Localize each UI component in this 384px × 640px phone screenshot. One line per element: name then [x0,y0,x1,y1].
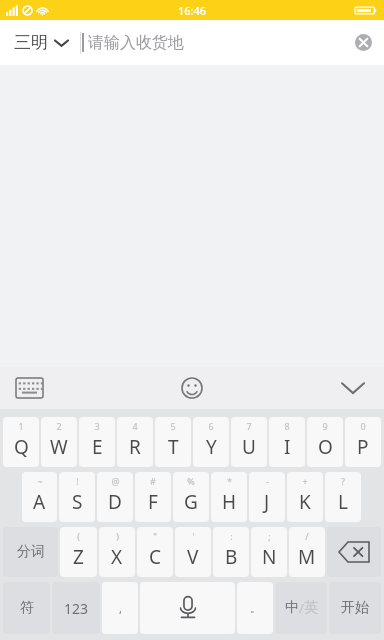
staticText: B [225,544,238,570]
button[interactable]: 7 [231,417,267,467]
button[interactable]: 。 [237,582,273,634]
button[interactable]: , [102,582,138,634]
staticText: ( [77,530,80,542]
staticText: 3 [94,420,100,432]
staticText: 1 [18,420,24,432]
button[interactable]: " [137,527,173,577]
staticText: Z [73,544,84,570]
staticText: C [149,544,162,570]
staticText: Q [14,434,29,460]
staticText: K [299,489,311,515]
button[interactable]: Hide keyboard [336,376,370,400]
button[interactable]: ! [59,472,95,522]
button[interactable]: 中 [275,582,327,634]
staticText: 。 [250,601,261,615]
button[interactable]: Backspace [327,527,381,577]
button[interactable]: : [213,527,249,577]
staticText: U [242,434,256,460]
staticText: 2 [56,420,62,432]
staticText: ! [76,475,79,487]
button[interactable]: % [173,472,209,522]
staticText: : [230,530,233,542]
button[interactable]: Voice input [140,582,235,634]
button[interactable]: # [135,472,171,522]
button[interactable]: ( [60,527,97,577]
staticText: # [150,475,156,487]
button[interactable]: - [249,472,285,522]
staticText: O [318,434,333,460]
button[interactable]: 4 [117,417,153,467]
button[interactable]: 符 [3,582,50,634]
staticText: " [153,530,157,542]
staticText: N [262,544,277,570]
staticText: 分词 [17,543,45,561]
button[interactable]: / [289,527,325,577]
button[interactable]: 8 [269,417,305,467]
button[interactable]: 三明 [0,26,80,59]
staticText: D [108,489,122,515]
staticText: X [111,544,123,570]
staticText: A [33,489,46,515]
button[interactable]: 3 [79,417,115,467]
button[interactable]: 0 [345,417,381,467]
staticText: 三明 [14,32,48,53]
button[interactable]: * [211,472,247,522]
staticText: E [92,434,103,460]
staticText: ' [192,530,195,542]
button[interactable]: ~ [22,472,57,522]
button[interactable]: Clear [343,24,384,61]
staticText: / [299,599,304,617]
button[interactable]: ; [251,527,287,577]
staticText: T [168,434,179,460]
staticText: 7 [246,420,252,432]
staticText: J [264,489,270,515]
staticText: * [227,475,232,487]
button[interactable]: 1 [3,417,39,467]
staticText: 4 [132,420,138,432]
staticText: / [305,530,309,542]
staticText: 5 [170,420,176,432]
staticText: - [266,475,269,487]
button[interactable]: 2 [41,417,77,467]
staticText: Y [206,434,217,460]
button[interactable]: ) [99,527,135,577]
button[interactable]: Emoji [176,372,208,404]
staticText: ? [341,475,345,487]
button[interactable]: 开始 [329,582,381,634]
staticText: ) [116,530,119,542]
staticText: + [302,475,308,487]
button[interactable]: 9 [307,417,343,467]
button[interactable]: ' [175,527,211,577]
staticText: 符 [20,599,34,617]
staticText: 中 [285,599,299,617]
button[interactable]: 分词 [3,527,58,577]
staticText: , [119,601,122,616]
button[interactable]: 6 [193,417,229,467]
staticText: S [72,489,83,515]
staticText: G [184,489,198,515]
staticText: 123 [64,599,89,618]
button[interactable]: ? [325,472,361,522]
staticText: 16:46 [178,3,207,18]
button[interactable]: + [287,472,323,522]
staticText: @ [111,475,120,487]
staticText: R [129,434,141,460]
staticText: 6 [208,420,214,432]
staticText: 8 [284,420,290,432]
button[interactable]: @ [97,472,133,522]
staticText: F [148,489,158,515]
button[interactable]: Keyboard layout [12,374,47,402]
button[interactable]: 5 [155,417,191,467]
staticText: 英 [304,599,318,617]
staticText: ; [268,530,271,542]
staticText: P [357,434,369,460]
staticText: M [298,544,316,570]
staticText: H [222,489,237,515]
staticText: V [187,544,199,570]
staticText: 开始 [341,599,369,617]
staticText: ~ [37,475,43,487]
staticText: L [338,489,348,515]
staticText: 9 [322,420,328,432]
staticText: 0 [360,420,366,432]
button[interactable]: 123 [52,582,100,634]
